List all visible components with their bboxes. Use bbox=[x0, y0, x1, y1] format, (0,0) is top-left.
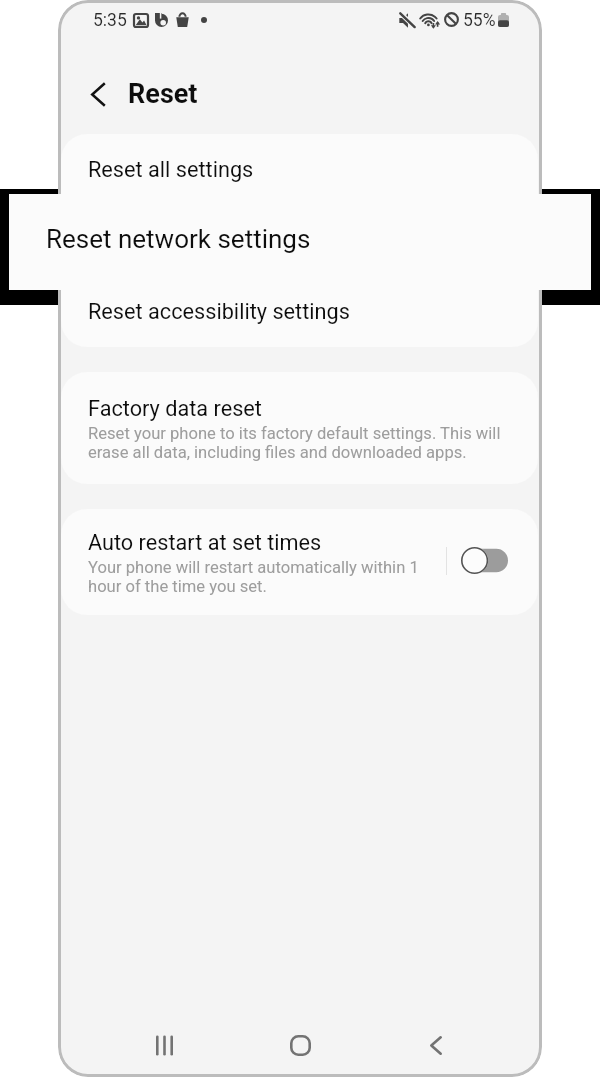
button[interactable]: Reset accessibility settings bbox=[61, 276, 538, 347]
staticText: Reset network settings bbox=[46, 224, 311, 254]
button[interactable]: Factory data reset bbox=[61, 372, 538, 484]
staticText: Reset accessibility settings bbox=[88, 299, 350, 324]
button[interactable]: Reset network settings bbox=[9, 194, 591, 290]
button[interactable]: Recent apps bbox=[137, 1018, 191, 1072]
button[interactable]: Navigate up bbox=[75, 71, 121, 117]
button[interactable]: Back bbox=[409, 1018, 463, 1072]
staticText: Reset your phone to its factory default … bbox=[88, 424, 501, 462]
button[interactable]: Reset all settings bbox=[61, 134, 538, 205]
staticText: Reset bbox=[128, 78, 198, 110]
staticText: Reset all settings bbox=[88, 157, 254, 182]
staticText: 55% bbox=[463, 10, 496, 31]
staticText: Factory data reset bbox=[88, 396, 262, 421]
staticText: Your phone will restart automatically wi… bbox=[88, 558, 419, 596]
button[interactable]: Home bbox=[273, 1018, 327, 1072]
button[interactable]: Auto restart at set times bbox=[88, 530, 419, 596]
staticText: 5:35 bbox=[93, 10, 127, 31]
button[interactable]: Reset network settings bbox=[61, 205, 538, 276]
button[interactable]: Auto restart at set times toggle bbox=[449, 537, 519, 583]
staticText: Reset network settings bbox=[88, 228, 309, 253]
staticText: Auto restart at set times bbox=[88, 530, 322, 555]
